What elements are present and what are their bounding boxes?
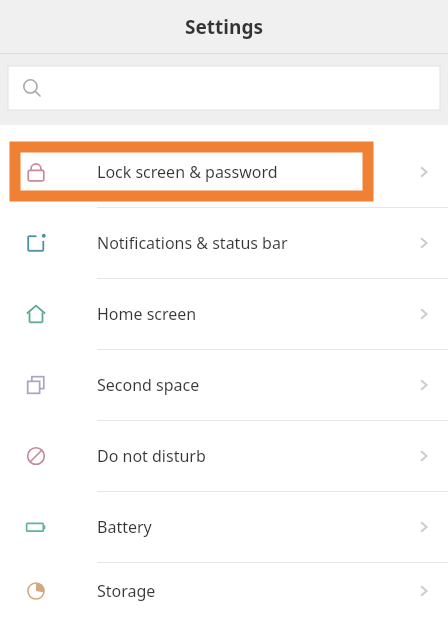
staticText: Home screen <box>97 303 400 325</box>
staticText: Lock screen & password <box>97 161 400 183</box>
button[interactable]: Home screen <box>0 278 448 349</box>
button[interactable]: Storage <box>0 562 448 620</box>
staticText: Do not disturb <box>97 445 400 467</box>
button[interactable]: Lock screen & password <box>0 136 448 207</box>
staticText: Storage <box>97 580 400 602</box>
staticText: Second space <box>97 374 400 396</box>
button[interactable]: Battery <box>0 491 448 562</box>
staticText: Battery <box>97 516 400 538</box>
button[interactable]: Do not disturb <box>0 420 448 491</box>
staticText: Notifications & status bar <box>97 232 400 254</box>
button[interactable]: Second space <box>0 349 448 420</box>
staticText: Settings <box>185 14 263 40</box>
button[interactable]: Notifications & status bar <box>0 207 448 278</box>
button[interactable]: Search settings <box>8 66 440 110</box>
